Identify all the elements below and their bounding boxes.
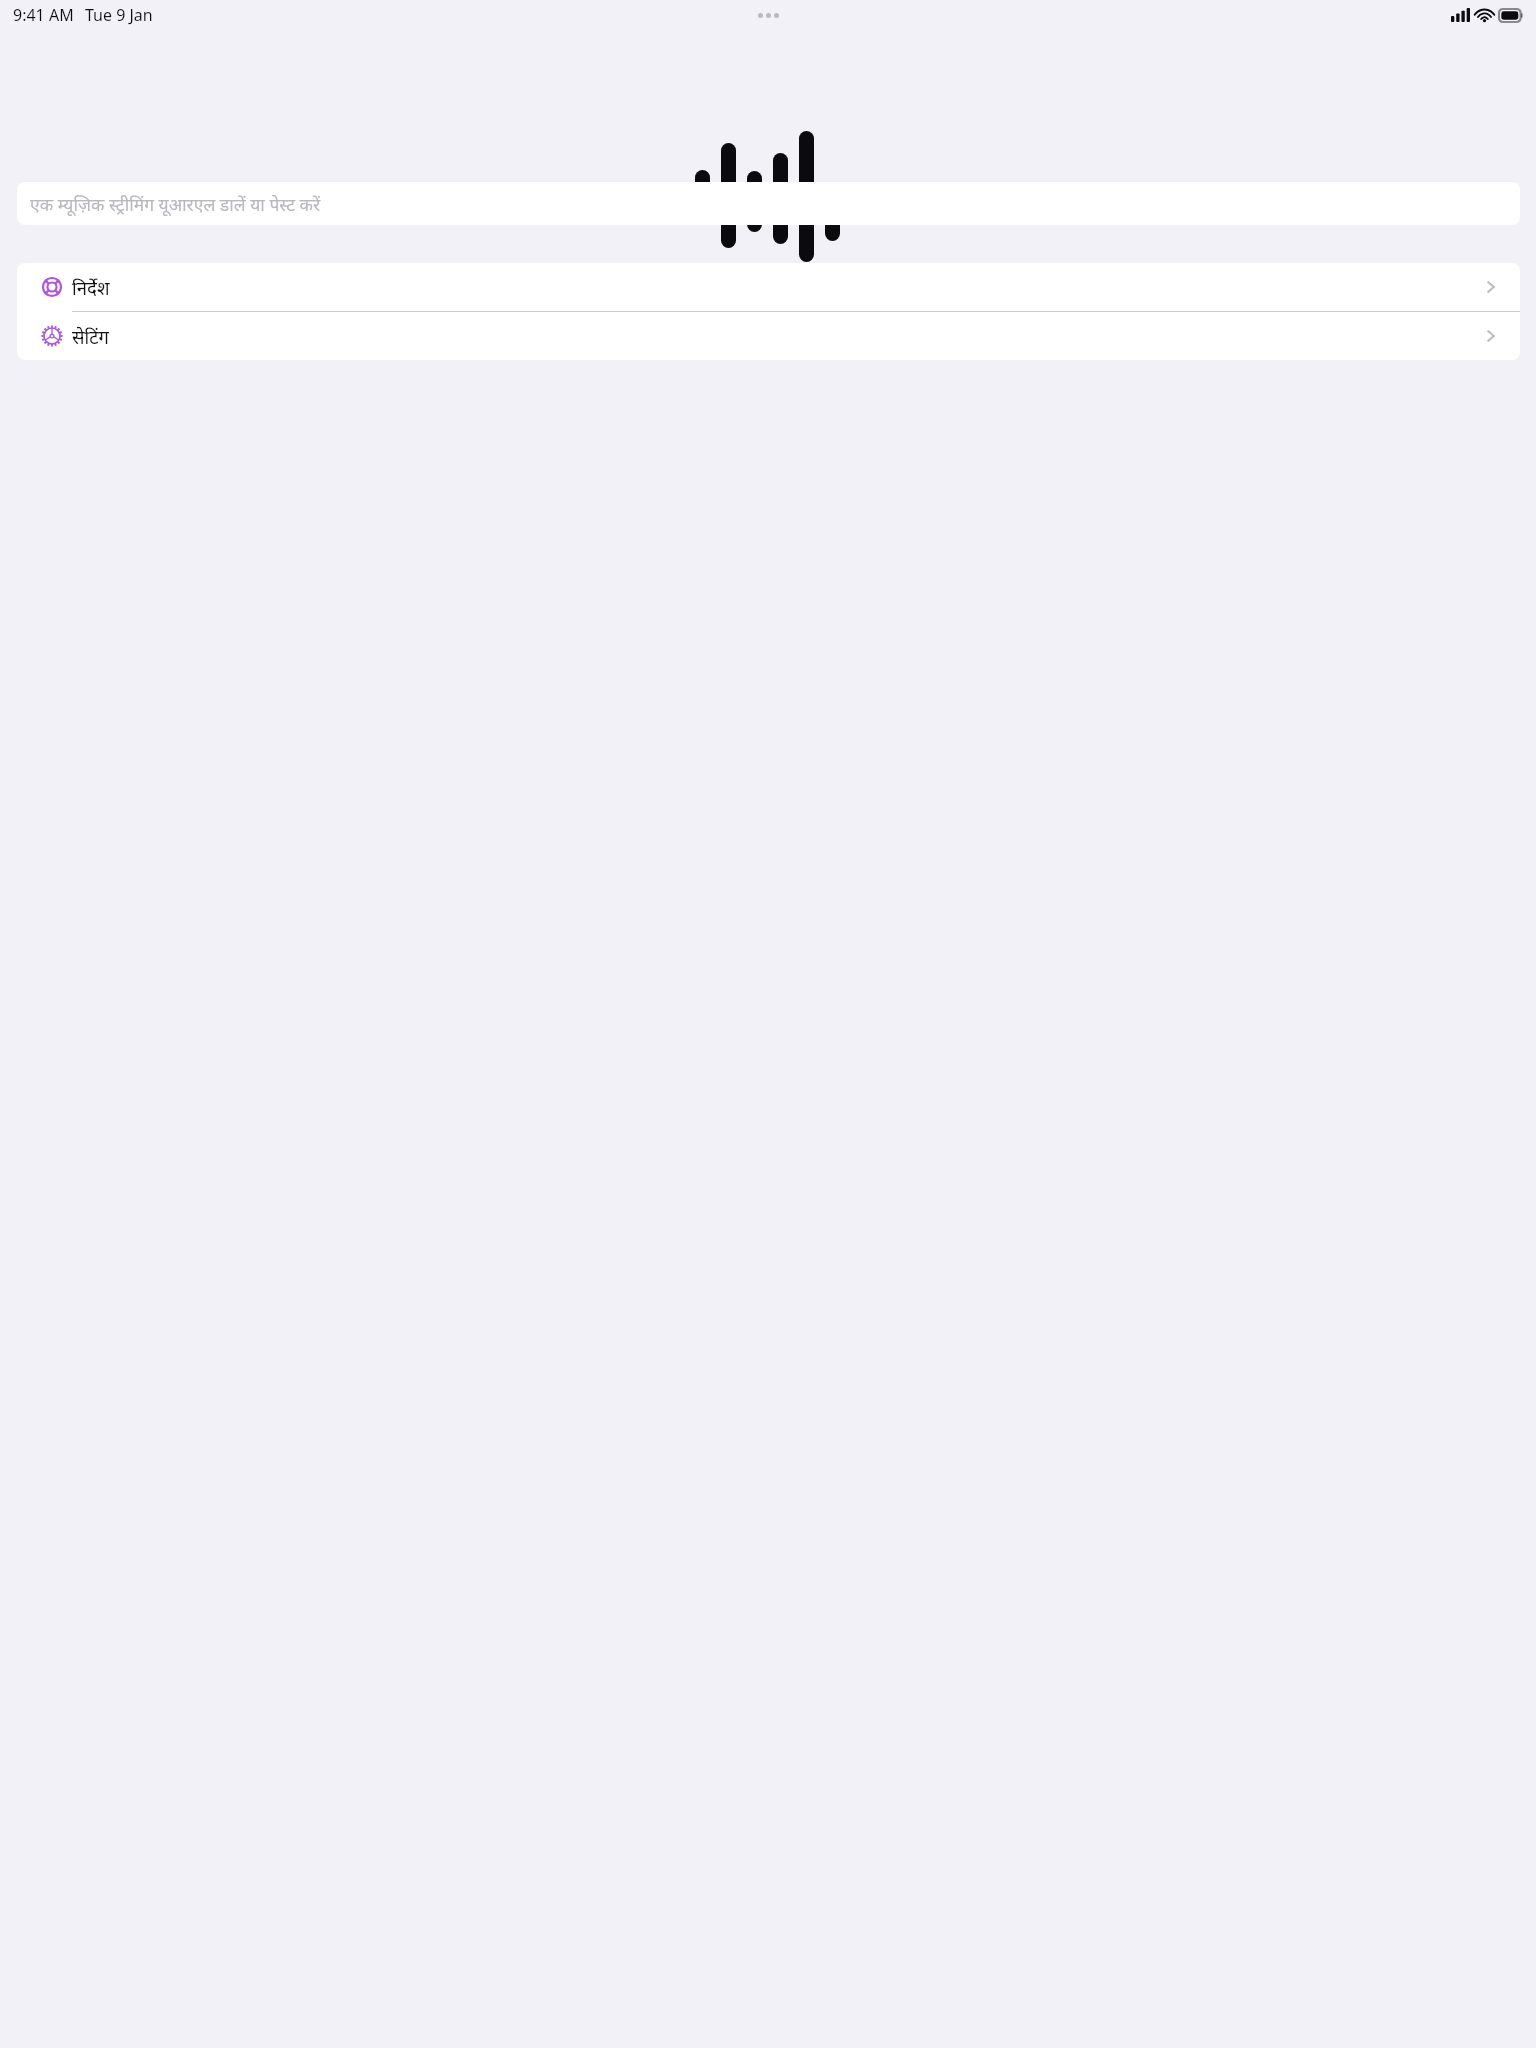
button[interactable]: एक म्यूज़िक स्ट्रीमिंग यूआरएल डालें या प… — [17, 182, 1520, 225]
staticText: निर्देश — [72, 275, 110, 300]
button[interactable]: Settings — [17, 312, 1520, 360]
staticText: एक म्यूज़िक स्ट्रीमिंग यूआरएल डालें या प… — [30, 192, 321, 216]
staticText: 9:41 AM — [13, 4, 74, 26]
staticText: Tue 9 Jan — [85, 4, 153, 26]
button[interactable]: Instructions — [17, 263, 1520, 311]
staticText: सेटिंग — [72, 324, 110, 349]
